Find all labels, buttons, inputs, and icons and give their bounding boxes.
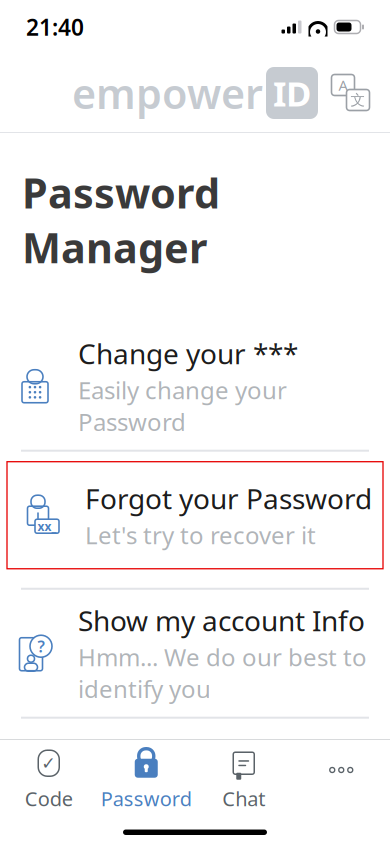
- staticText: Password: [101, 785, 192, 812]
- button[interactable]: ?: [0, 594, 390, 713]
- staticText: Let's try to recover it: [85, 519, 316, 551]
- staticText: Change your ***: [78, 335, 298, 372]
- button[interactable]: Change your ***: [0, 327, 390, 446]
- staticText: Hmm... We do our best to identify you: [78, 641, 367, 705]
- button[interactable]: Password: [97, 738, 195, 812]
- staticText: Forgot your Password: [85, 480, 372, 517]
- button[interactable]: xx_: [7, 462, 383, 569]
- staticText: ✓: [41, 753, 56, 773]
- staticText: empower: [72, 66, 263, 120]
- staticText: Easily change your Password: [78, 374, 287, 438]
- staticText: A: [338, 75, 347, 95]
- button[interactable]: ✓: [0, 738, 97, 812]
- staticText: Code: [25, 785, 73, 812]
- staticText: Show my account Info: [78, 602, 365, 639]
- staticText: ?: [37, 636, 44, 657]
- staticText: ID: [273, 70, 311, 116]
- staticText: 21:40: [26, 12, 84, 42]
- staticText: Chat: [222, 785, 265, 812]
- staticText: xx_: [37, 518, 56, 534]
- button[interactable]: Change language: [328, 71, 372, 115]
- staticText: 文: [350, 91, 365, 109]
- button[interactable]: More: [292, 745, 390, 805]
- button[interactable]: Chat: [195, 738, 292, 812]
- staticText: Password Manager: [22, 165, 220, 275]
